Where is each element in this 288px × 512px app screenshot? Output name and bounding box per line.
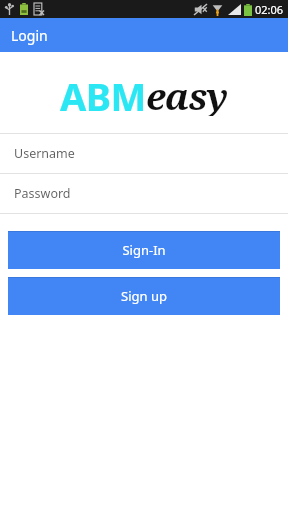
button[interactable]: Sign up xyxy=(8,277,280,315)
staticText: Login xyxy=(11,26,48,45)
staticText: Sign-In xyxy=(122,241,166,259)
staticText: Sign up xyxy=(121,287,167,305)
staticText: 02:06 xyxy=(255,2,284,17)
staticText: Password xyxy=(14,185,71,202)
staticText: Username xyxy=(14,145,75,162)
button[interactable]: Username xyxy=(0,134,288,173)
staticText: easy xyxy=(146,70,228,116)
staticText: ABM xyxy=(60,70,146,116)
button[interactable]: Sign-In xyxy=(8,231,280,269)
button[interactable]: Password xyxy=(0,174,288,213)
